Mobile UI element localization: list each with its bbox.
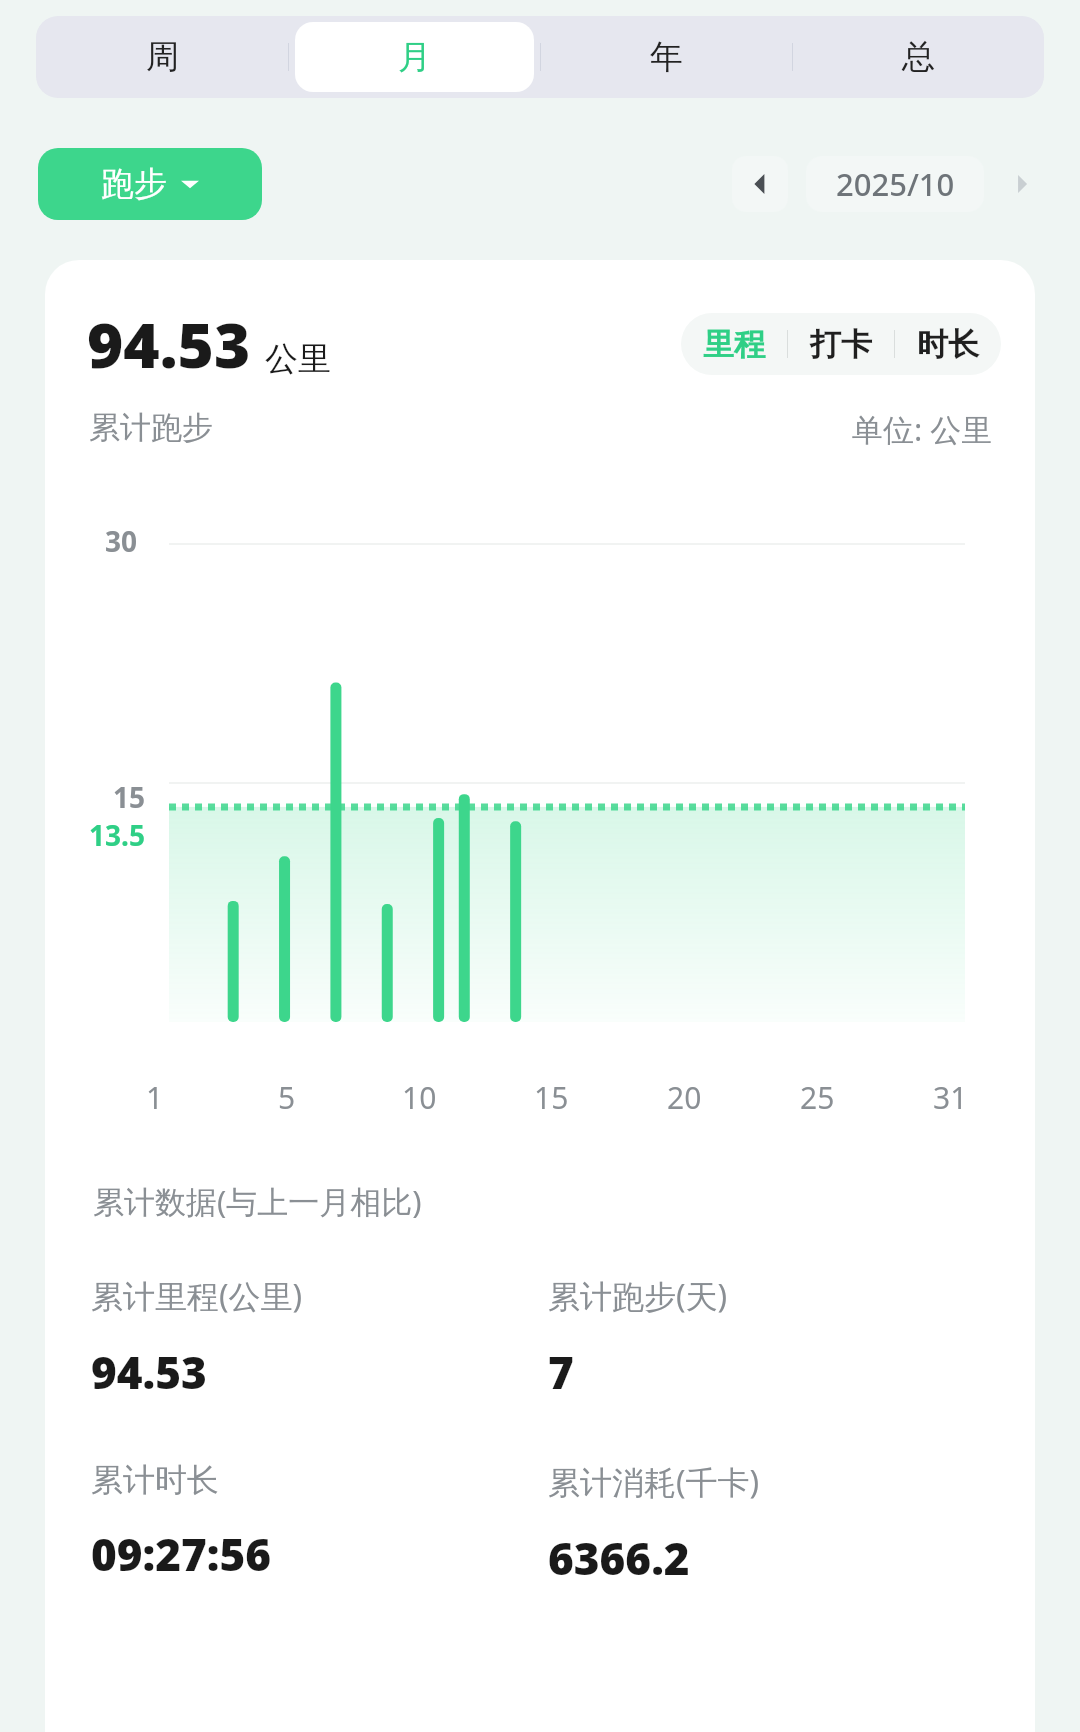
- button[interactable]: 时长: [895, 313, 1001, 375]
- staticText: 累计消耗(千卡): [548, 1460, 760, 1504]
- button[interactable]: 跑步: [38, 148, 262, 220]
- staticText: 月: [398, 36, 431, 78]
- button[interactable]: 里程: [681, 313, 787, 375]
- staticText: 15: [534, 1077, 569, 1118]
- staticText: 总: [902, 36, 935, 78]
- staticText: 94.53: [91, 1342, 207, 1402]
- button[interactable]: 2025/10: [806, 156, 984, 212]
- staticText: 周: [146, 36, 179, 78]
- staticText: 1: [146, 1077, 164, 1118]
- staticText: 里程: [703, 325, 765, 364]
- button[interactable]: 年: [547, 22, 786, 92]
- staticText: 2025/10: [836, 163, 955, 205]
- staticText: 5: [278, 1077, 296, 1118]
- staticText: 累计数据(与上一月相比): [93, 1180, 422, 1222]
- staticText: 跑步: [101, 163, 167, 205]
- button[interactable]: 总: [799, 22, 1038, 92]
- staticText: 10: [402, 1077, 437, 1118]
- staticText: 单位: 公里: [852, 408, 993, 450]
- staticText: 13.5: [89, 816, 145, 854]
- staticText: 累计时长: [91, 1460, 219, 1500]
- staticText: 7: [548, 1342, 574, 1402]
- button[interactable]: 月: [295, 22, 534, 92]
- staticText: 09:27:56: [91, 1524, 272, 1584]
- staticText: 年: [650, 36, 683, 78]
- staticText: 6366.2: [548, 1528, 690, 1588]
- staticText: 累计跑步(天): [548, 1274, 728, 1318]
- staticText: 累计里程(公里): [91, 1274, 303, 1318]
- button[interactable]: Next month: [1002, 156, 1042, 212]
- staticText: 25: [800, 1077, 835, 1118]
- staticText: 20: [667, 1077, 702, 1118]
- staticText: 94.53: [87, 302, 251, 386]
- staticText: 公里: [265, 338, 331, 380]
- button[interactable]: 打卡: [788, 313, 894, 375]
- staticText: 时长: [917, 325, 979, 364]
- staticText: 31: [933, 1077, 968, 1118]
- button[interactable]: Previous month: [732, 156, 788, 212]
- staticText: 打卡: [810, 325, 872, 364]
- staticText: 累计跑步: [89, 408, 213, 447]
- button[interactable]: 周: [42, 22, 282, 92]
- staticText: 15: [113, 778, 146, 816]
- staticText: 30: [105, 522, 138, 560]
